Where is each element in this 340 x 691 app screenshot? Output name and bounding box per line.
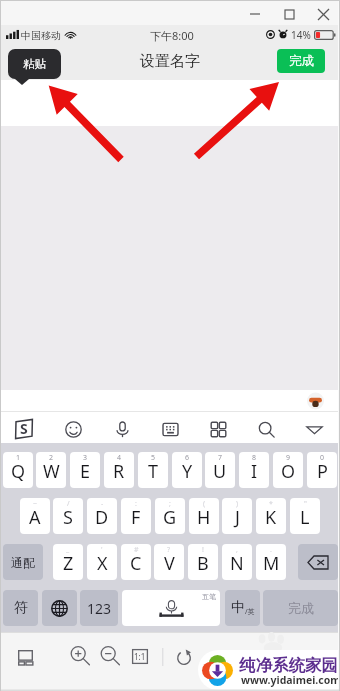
- button[interactable]: Voice input: [104, 416, 140, 442]
- staticText: F: [131, 505, 141, 530]
- button[interactable]: 完成: [277, 49, 325, 73]
- button[interactable]: (: [189, 498, 219, 534]
- staticText: X: [97, 551, 108, 576]
- staticText: W: [43, 459, 60, 484]
- staticText: /英: [245, 607, 255, 617]
- button[interactable]: Language: [42, 590, 77, 626]
- staticText: ;: [169, 499, 171, 509]
- button[interactable]: #: [121, 544, 151, 580]
- button[interactable]: 1: [3, 452, 33, 488]
- button[interactable]: Actual size: [130, 647, 149, 666]
- button[interactable]: *: [256, 498, 286, 534]
- staticText: A: [29, 505, 41, 530]
- button[interactable]: 符: [3, 590, 38, 626]
- staticText: ,: [236, 545, 238, 555]
- button[interactable]: Space: [122, 590, 220, 626]
- staticText: 下午8:00: [150, 28, 194, 43]
- staticText: -: [101, 499, 104, 509]
- button[interactable]: Sticker: [307, 393, 324, 409]
- other: Watermark: [198, 650, 340, 690]
- button[interactable]: 6: [172, 452, 202, 488]
- button[interactable]: !: [188, 544, 218, 580]
- staticText: R: [113, 459, 125, 484]
- button[interactable]: ": [290, 498, 320, 534]
- staticText: B: [197, 551, 209, 576]
- staticText: M: [263, 551, 280, 576]
- staticText: #: [134, 545, 139, 555]
- staticText: 设置名字: [140, 52, 200, 71]
- button[interactable]: :: [121, 498, 151, 534]
- button[interactable]: Zoom out: [98, 644, 122, 668]
- staticText: 123: [87, 599, 112, 618]
- button[interactable]: ~: [20, 498, 50, 534]
- staticText: 完成: [288, 600, 314, 616]
- button[interactable]: 2: [36, 452, 66, 488]
- staticText: V: [164, 551, 175, 576]
- button[interactable]: Minimize: [244, 3, 266, 25]
- button[interactable]: 9: [273, 452, 303, 488]
- button[interactable]: 完成: [263, 590, 338, 626]
- staticText: 完成: [289, 53, 314, 69]
- staticText: ~: [33, 499, 38, 509]
- staticText: E: [80, 459, 91, 484]
- button[interactable]: Hide keyboard: [296, 416, 332, 442]
- button[interactable]: -: [87, 498, 117, 534]
- staticText: S: [63, 505, 73, 530]
- button[interactable]: 0: [307, 452, 337, 488]
- staticText: 14%: [291, 28, 311, 42]
- staticText: K: [265, 505, 277, 530]
- button[interactable]: Refresh: [172, 647, 196, 667]
- staticText: C: [130, 551, 142, 576]
- button[interactable]: Emoji: [55, 416, 91, 442]
- staticText: Y: [182, 459, 193, 484]
- staticText: 中: [231, 599, 245, 617]
- staticText: O: [281, 459, 296, 484]
- staticText: 1:1: [134, 651, 146, 662]
- button[interactable]: ;: [155, 498, 185, 534]
- staticText: /: [67, 499, 70, 509]
- button[interactable]: ?: [154, 544, 184, 580]
- button[interactable]: More: [200, 416, 236, 442]
- button[interactable]: ): [222, 498, 252, 534]
- staticText: 粘贴: [23, 57, 46, 71]
- button[interactable]: /: [53, 498, 83, 534]
- staticText: 2: [49, 453, 54, 463]
- button[interactable]: Backspace: [298, 544, 338, 580]
- staticText: 7: [218, 453, 223, 463]
- button[interactable]: 3: [70, 452, 100, 488]
- button[interactable]: Chinese English toggle: [225, 590, 260, 626]
- staticText: www.yidaimei.com: [241, 673, 340, 687]
- staticText: 1: [16, 453, 21, 463]
- button[interactable]: 4: [104, 452, 134, 488]
- staticText: 0: [320, 453, 325, 463]
- button[interactable]: Screen layout: [13, 645, 38, 669]
- staticText: Q: [11, 459, 26, 484]
- button[interactable]: 通配: [3, 544, 43, 580]
- button[interactable]: ,: [222, 544, 252, 580]
- button[interactable]: 123: [80, 590, 118, 626]
- button[interactable]: ': [87, 544, 117, 580]
- button[interactable]: Search: [248, 416, 284, 442]
- staticText: 3: [83, 453, 88, 463]
- staticText: G: [163, 505, 177, 530]
- staticText: P: [317, 459, 328, 484]
- button[interactable]: Input method: [8, 416, 40, 442]
- staticText: Z: [63, 551, 74, 576]
- button[interactable]: 8: [239, 452, 269, 488]
- staticText: 6: [185, 453, 190, 463]
- button[interactable]: _: [53, 544, 83, 580]
- button[interactable]: 5: [138, 452, 168, 488]
- button[interactable]: Zoom in: [68, 644, 92, 668]
- staticText: D: [95, 505, 109, 530]
- button[interactable]: 7: [205, 452, 235, 488]
- staticText: 五笔: [202, 592, 216, 601]
- button[interactable]: Keyboard: [152, 416, 188, 442]
- staticText: _: [66, 545, 70, 555]
- button[interactable]: 粘贴: [8, 49, 61, 79]
- button[interactable]: .: [256, 544, 286, 580]
- button[interactable]: Maximize: [278, 3, 300, 25]
- button[interactable]: Close: [312, 3, 334, 25]
- staticText: ?: [167, 545, 171, 555]
- staticText: .: [270, 545, 272, 555]
- staticText: S: [20, 419, 28, 438]
